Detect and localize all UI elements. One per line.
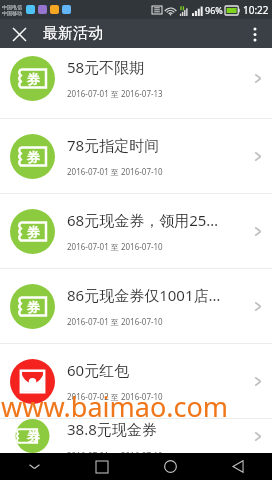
staticText: 2016-07-02 至 2016-07-10 bbox=[67, 391, 163, 402]
staticText: 2016-07-01 至 2016-07-10 bbox=[67, 241, 163, 252]
staticText: 2016-07-01 至 2016-07-13 bbox=[67, 88, 163, 99]
button[interactable]: 券 bbox=[0, 48, 272, 118]
button[interactable]: 券 bbox=[0, 419, 272, 453]
button[interactable]: Close bbox=[6, 21, 32, 47]
staticText: 2016-07-01 至 2016-07-10 bbox=[67, 316, 163, 327]
staticText: 中国电信 bbox=[2, 4, 22, 10]
staticText: 2016-07-01 至 2016-07-10 bbox=[67, 166, 163, 177]
button[interactable]: 券 bbox=[0, 119, 272, 193]
button[interactable]: Recent apps bbox=[68, 453, 136, 480]
staticText: 86元现金券仅1001店… bbox=[67, 285, 221, 305]
button[interactable]: 60元红包 bbox=[0, 344, 272, 418]
staticText: 10:22 bbox=[243, 3, 269, 17]
staticText: 中国移动 bbox=[2, 10, 22, 16]
button[interactable]: Home bbox=[136, 453, 204, 480]
button[interactable]: Hide navigation bar bbox=[0, 453, 68, 480]
staticText: 58元不限期 bbox=[67, 57, 145, 77]
staticText: 券 bbox=[27, 224, 40, 240]
staticText: 券 bbox=[27, 299, 40, 315]
staticText: 券 bbox=[27, 149, 40, 165]
staticText: www.baimao.com bbox=[1, 388, 229, 425]
button[interactable]: 券 bbox=[0, 194, 272, 268]
staticText: 78元指定时间 bbox=[67, 135, 160, 155]
button[interactable]: 券 bbox=[0, 269, 272, 343]
staticText: 2016-07-01 至 2016-07-10 bbox=[67, 450, 163, 453]
button[interactable]: Back bbox=[204, 453, 272, 480]
staticText: 96% bbox=[205, 4, 223, 16]
staticText: 38.8元现金券 bbox=[67, 419, 157, 439]
staticText: 券 bbox=[27, 428, 40, 444]
staticText: 券 bbox=[27, 71, 40, 87]
staticText: 60元红包 bbox=[67, 360, 130, 380]
staticText: 最新活动 bbox=[43, 24, 103, 43]
button[interactable]: More options bbox=[242, 21, 268, 47]
staticText: 68元现金券，领用25… bbox=[67, 210, 219, 230]
